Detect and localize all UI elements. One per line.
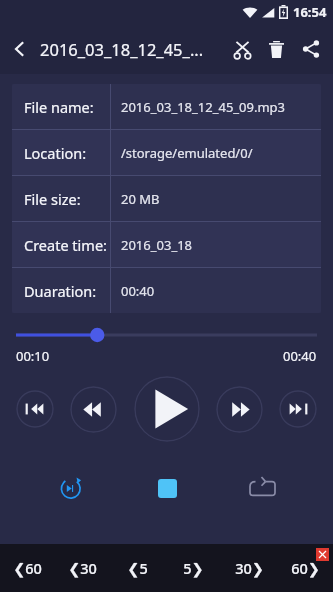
staticText: 2016_03_18_12_45_09.mp3 (121, 98, 286, 116)
button[interactable]: Duaration: (12, 268, 321, 313)
button[interactable]: Rewind (70, 386, 117, 433)
staticText: ❮30 (68, 558, 97, 578)
staticText: 2016_03_18_12_45_... (40, 38, 224, 60)
button[interactable]: ❮60 (0, 544, 55, 592)
button[interactable]: Trim (224, 24, 260, 74)
button[interactable]: File name: (12, 84, 321, 129)
staticText: 16:54 (293, 3, 327, 21)
button[interactable]: Next (279, 390, 317, 428)
staticText: /storage/emulated/0/Recorders/ (121, 144, 317, 162)
button[interactable]: File size: (12, 176, 321, 221)
button[interactable]: ❮30 (55, 544, 110, 592)
button[interactable]: 5❯ (165, 544, 221, 592)
staticText: 2016_03_18 (121, 236, 193, 254)
button[interactable]: Location: (12, 130, 321, 175)
button[interactable]: Create time: (12, 222, 321, 267)
button[interactable]: 60❯ (277, 544, 333, 592)
button[interactable]: Fast forward (216, 386, 263, 433)
button[interactable]: Previous (16, 390, 54, 428)
button[interactable]: Replay (52, 469, 90, 507)
staticText: ❮60 (13, 558, 42, 578)
staticText: ❮5 (127, 558, 148, 578)
button[interactable]: Back (0, 29, 40, 69)
button[interactable]: Close (316, 548, 329, 561)
staticText: 60❯ (291, 558, 320, 578)
staticText: 00:40 (283, 347, 317, 365)
button[interactable]: Delete (260, 24, 293, 74)
staticText: Create time: (24, 235, 107, 255)
staticText: 20 MB (121, 190, 160, 208)
staticText: File size: (24, 189, 81, 209)
button[interactable]: Share (293, 24, 329, 74)
button[interactable]: Play (134, 376, 200, 442)
button[interactable]: Stop (148, 469, 186, 507)
staticText: 5❯ (183, 558, 204, 578)
staticText: 00:10 (16, 347, 50, 365)
button[interactable]: 30❯ (221, 544, 277, 592)
button[interactable]: ❮5 (110, 544, 165, 592)
staticText: 30❯ (235, 558, 264, 578)
button[interactable]: Repeat (243, 469, 281, 507)
staticText: 00:40 (121, 282, 155, 300)
staticText: Duaration: (24, 281, 97, 301)
button[interactable]: Seek bar (16, 325, 317, 345)
staticText: File name: (24, 97, 94, 117)
staticText: Location: (24, 143, 87, 163)
